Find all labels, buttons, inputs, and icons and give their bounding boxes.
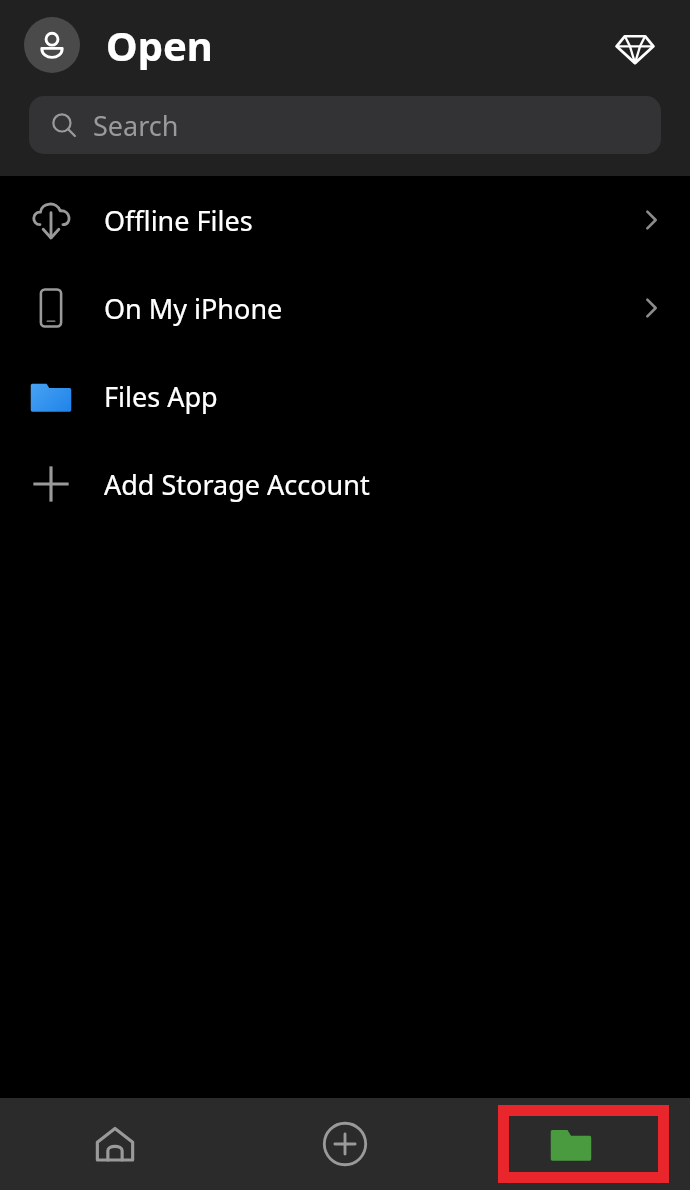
button[interactable]: Files (460, 1098, 690, 1190)
button[interactable]: Home (0, 1098, 230, 1190)
staticText: Search (93, 107, 179, 144)
button[interactable]: Offline Files (0, 176, 690, 264)
staticText: Open (106, 18, 213, 72)
button[interactable]: Add Storage Account (0, 440, 690, 528)
staticText: Files App (104, 378, 218, 415)
staticText: On My iPhone (104, 290, 283, 327)
button[interactable]: Open (106, 18, 213, 72)
button[interactable]: Account (24, 17, 80, 73)
button[interactable]: Add (230, 1098, 460, 1190)
button[interactable]: Search (29, 96, 661, 154)
staticText: Offline Files (104, 202, 253, 239)
button[interactable]: On My iPhone (0, 264, 690, 352)
staticText: Add Storage Account (104, 466, 370, 503)
button[interactable]: Files App (0, 352, 690, 440)
button[interactable]: Premium (604, 17, 666, 79)
